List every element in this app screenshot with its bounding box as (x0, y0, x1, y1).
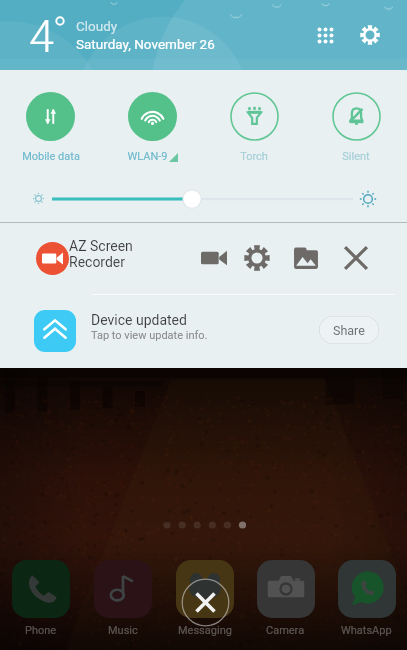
button[interactable]: All quick settings (308, 18, 342, 52)
button[interactable]: Camera (245, 554, 326, 637)
button[interactable]: Silent (305, 70, 407, 163)
button[interactable]: Music (82, 554, 164, 637)
staticText: Tap to view update info. (91, 329, 208, 342)
staticText: 4 (29, 10, 54, 63)
button[interactable]: Device updated (0, 295, 407, 368)
button[interactable]: Torch (203, 70, 305, 163)
staticText: Recorder (69, 254, 126, 270)
button[interactable]: Share (319, 316, 379, 344)
staticText: WhatsApp (341, 624, 392, 637)
staticText: Saturday, November 26 (76, 36, 215, 52)
staticText: Cloudy (76, 18, 118, 34)
staticText: Messaging (178, 624, 232, 637)
staticText: Phone (25, 624, 57, 637)
staticText: Silent (342, 150, 370, 163)
button[interactable]: WLAN-9 (101, 70, 203, 163)
staticText: Music (108, 624, 138, 637)
button[interactable]: Messaging (164, 554, 245, 637)
staticText: WLAN-9 (127, 150, 168, 163)
button[interactable]: Close notification shade (181, 578, 230, 627)
button[interactable] (0, 179, 407, 219)
button[interactable]: Mobile data (0, 70, 101, 163)
button[interactable]: Gallery (288, 240, 324, 276)
staticText: Device updated (91, 312, 187, 328)
button[interactable]: Phone (0, 554, 82, 637)
staticText: Share (333, 323, 365, 338)
button[interactable]: Settings (353, 18, 387, 52)
staticText: Camera (266, 624, 305, 637)
button[interactable]: Dismiss (338, 240, 374, 276)
button[interactable]: AZ Screen (0, 223, 407, 294)
staticText: Torch (240, 150, 268, 163)
staticText: Mobile data (22, 150, 80, 163)
button[interactable]: WhatsApp (326, 554, 407, 637)
button[interactable]: Settings (239, 240, 275, 276)
staticText: AZ Screen (69, 238, 133, 254)
button[interactable]: Record (196, 240, 232, 276)
